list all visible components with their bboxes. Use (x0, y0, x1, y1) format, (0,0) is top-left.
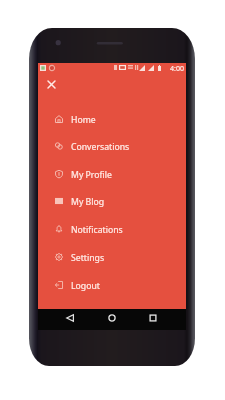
staticText: Logout (71, 280, 100, 292)
button[interactable]: My Blog (38, 187, 186, 215)
other: Phone device frame (29, 28, 195, 366)
button[interactable]: Settings (38, 243, 186, 271)
button[interactable]: Notifications (38, 215, 186, 243)
staticText: Notifications (71, 224, 123, 236)
button[interactable]: Home (38, 105, 186, 133)
staticText: Settings (71, 252, 105, 264)
staticText: My Blog (71, 196, 105, 208)
staticText: My Profile (71, 169, 112, 181)
button[interactable]: Close menu (40, 73, 62, 95)
staticText: 4:00 (170, 64, 184, 74)
button[interactable]: Logout (38, 271, 186, 299)
button[interactable]: Recent apps (144, 309, 162, 327)
button[interactable]: Conversations (38, 132, 186, 160)
staticText: Conversations (71, 141, 130, 153)
button[interactable]: My Profile (38, 160, 186, 188)
button[interactable]: Home (103, 309, 121, 327)
button[interactable]: Back (61, 309, 79, 327)
staticText: Home (71, 114, 96, 126)
